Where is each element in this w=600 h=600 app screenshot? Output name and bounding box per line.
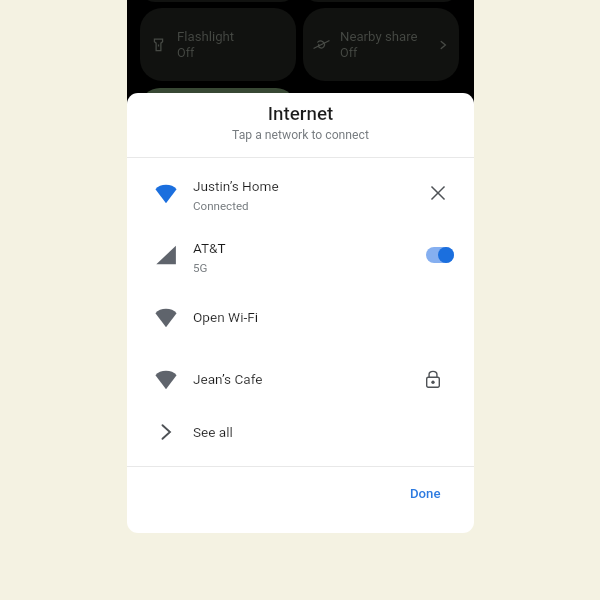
button[interactable]: Toggle mobile data [418, 233, 462, 277]
staticText: Done [410, 486, 441, 501]
staticText: Nearby share [340, 29, 418, 44]
button[interactable]: Done [398, 480, 453, 507]
staticText: Tap a network to connect [127, 128, 474, 142]
staticText: Flashlight [177, 29, 235, 44]
button[interactable]: Justin’s Home [127, 162, 474, 224]
staticText: Connected [193, 199, 249, 213]
button[interactable]: Flashlight [140, 8, 296, 81]
button[interactable]: Nearby share [303, 8, 459, 81]
button[interactable]: Secured network [411, 357, 455, 401]
button[interactable]: AT&T [127, 224, 474, 286]
button[interactable]: Disconnect [416, 171, 460, 215]
staticText: Justin’s Home [193, 178, 279, 194]
staticText: 5G [193, 261, 208, 275]
button[interactable]: See all [127, 410, 474, 454]
staticText: See all [193, 424, 233, 440]
staticText: Internet [127, 103, 474, 125]
staticText: Off [340, 45, 358, 60]
staticText: AT&T [193, 240, 226, 256]
staticText: Jean’s Cafe [193, 371, 263, 387]
button[interactable]: Open Wi-Fi [127, 286, 474, 348]
staticText: Open Wi-Fi [193, 309, 259, 325]
staticText: Off [177, 45, 195, 60]
button[interactable]: Jean’s Cafe [127, 348, 474, 410]
